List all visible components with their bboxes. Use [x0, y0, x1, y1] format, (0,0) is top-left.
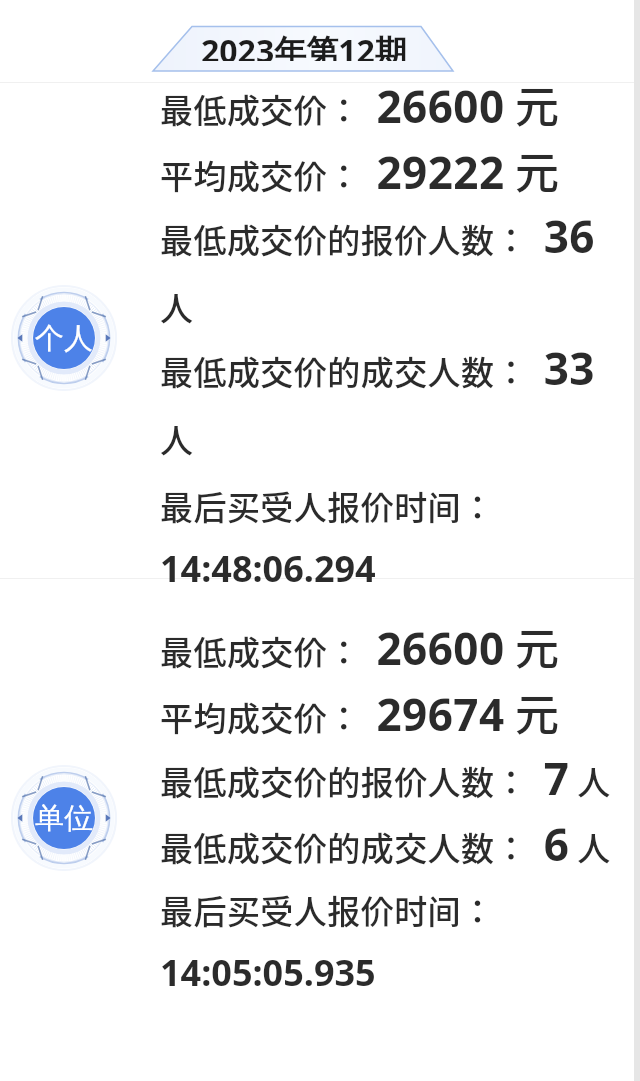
staticText: 人 — [160, 283, 194, 331]
staticText: 14:05:05.935 — [160, 948, 376, 997]
staticText: 最后买受人报价时间： — [160, 886, 495, 934]
staticText: 最低成交价： 26600 元 — [160, 614, 560, 678]
staticText: 最后买受人报价时间： — [160, 482, 495, 530]
staticText: 人 — [160, 415, 194, 463]
staticText: 最低成交价的成交人数： 33 — [160, 338, 595, 398]
staticText: 2023年第12期 — [201, 29, 407, 61]
staticText: 14:48:06.294 — [160, 544, 376, 593]
staticText: 个人 — [35, 320, 93, 357]
staticText: 单位 — [35, 800, 93, 837]
staticText: 最低成交价的报价人数： 36 — [160, 206, 595, 266]
button[interactable]: 个人 — [10, 284, 118, 392]
staticText: 平均成交价： 29222 元 — [160, 138, 560, 202]
staticText: 最低成交价的报价人数： 7 人 — [160, 748, 611, 808]
staticText: 最低成交价： 26600 元 — [160, 72, 560, 136]
button[interactable]: 单位 — [10, 764, 118, 872]
staticText: 平均成交价： 29674 元 — [160, 680, 560, 744]
staticText: 最低成交价的成交人数： 6 人 — [160, 814, 611, 874]
